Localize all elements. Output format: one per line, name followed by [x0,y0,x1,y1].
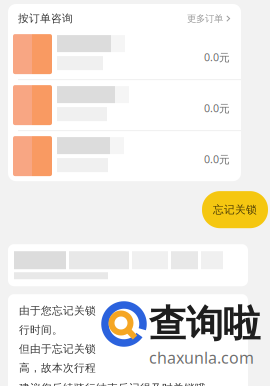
staticText: 建议您后续骑行结束后记得及时关锁哦~ [19,381,212,386]
staticText: 由于您忘记关锁 [19,304,96,317]
staticText: 0.0元 [204,50,230,64]
staticText: 高，故本次行程 [19,361,96,375]
staticText: 更多订单 [187,13,223,24]
staticText: 0.0元 [204,152,230,166]
staticText: 0.0元 [204,101,230,115]
staticText: chaxunla.com [149,347,254,368]
staticText: 忘记关锁 [213,203,257,216]
button[interactable]: 0.0元 [8,131,241,181]
staticText: 查询啦 [149,301,260,347]
button[interactable]: 0.0元 [8,29,241,79]
staticText: 按订单咨询 [18,12,73,25]
button[interactable]: 0.0元 [8,80,241,130]
button[interactable]: 忘记关锁 [202,191,268,228]
staticText: 行时间。 [19,323,63,336]
staticText: 但由于忘记关锁 [19,342,96,355]
button[interactable]: 更多订单 [187,13,230,24]
